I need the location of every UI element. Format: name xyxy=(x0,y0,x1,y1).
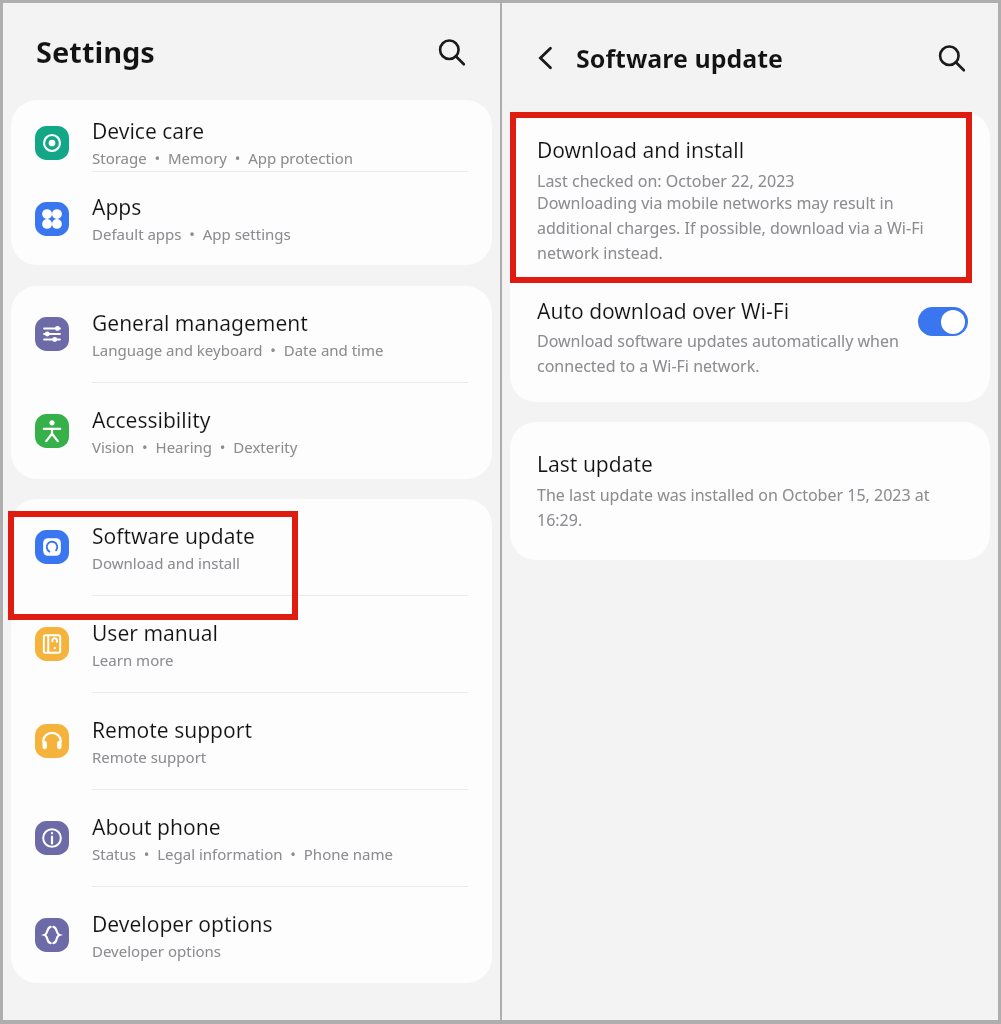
staticText: Download software updates automatically … xyxy=(537,330,900,376)
staticText: User manual xyxy=(92,619,218,648)
staticText: Accessibility xyxy=(92,406,211,435)
staticText: Default apps • App settings xyxy=(92,224,291,244)
staticText: Learn more xyxy=(92,650,174,670)
staticText: Vision • Hearing • Dexterity xyxy=(92,437,298,457)
staticText: Software update xyxy=(92,522,255,551)
staticText: About phone xyxy=(92,813,221,842)
button[interactable]: Software update xyxy=(11,499,492,595)
staticText: Settings xyxy=(36,32,155,71)
staticText: Last update xyxy=(537,450,653,479)
button[interactable]: Apps xyxy=(11,172,492,265)
button[interactable]: Auto download over Wi-Fi xyxy=(510,285,990,402)
staticText: Download and install xyxy=(537,136,745,165)
staticText: Software update xyxy=(576,41,784,75)
button[interactable]: Search xyxy=(428,29,474,75)
button[interactable]: Download and install xyxy=(510,112,990,285)
staticText: Storage • Memory • App protection xyxy=(92,148,354,168)
button[interactable]: Remote support xyxy=(11,693,492,789)
button[interactable]: Auto download over Wi-Fi toggle xyxy=(918,307,968,336)
staticText: Last checked on: October 22, 2023 xyxy=(537,170,795,192)
staticText: Language and keyboard • Date and time xyxy=(92,340,384,360)
staticText: Downloading via mobile networks may resu… xyxy=(537,192,968,263)
staticText: Device care xyxy=(92,117,205,146)
staticText: Download and install xyxy=(92,553,240,573)
button[interactable]: Accessibility xyxy=(11,383,492,479)
staticText: Developer options xyxy=(92,941,222,961)
staticText: Remote support xyxy=(92,747,207,767)
staticText: Remote support xyxy=(92,716,252,745)
staticText: Developer options xyxy=(92,910,273,939)
staticText: Auto download over Wi-Fi xyxy=(537,297,790,326)
button[interactable]: Last update xyxy=(510,422,990,560)
staticText: Status • Legal information • Phone name xyxy=(92,844,394,864)
button[interactable]: Search xyxy=(928,35,974,81)
button[interactable]: Back xyxy=(524,36,568,80)
button[interactable]: General management xyxy=(11,286,492,382)
staticText: Apps xyxy=(92,193,142,222)
button[interactable]: Developer options xyxy=(11,887,492,983)
button[interactable]: Device care xyxy=(11,114,492,171)
button[interactable]: About phone xyxy=(11,790,492,886)
staticText: The last update was installed on October… xyxy=(537,484,968,530)
button[interactable]: User manual xyxy=(11,596,492,692)
staticText: General management xyxy=(92,309,308,338)
